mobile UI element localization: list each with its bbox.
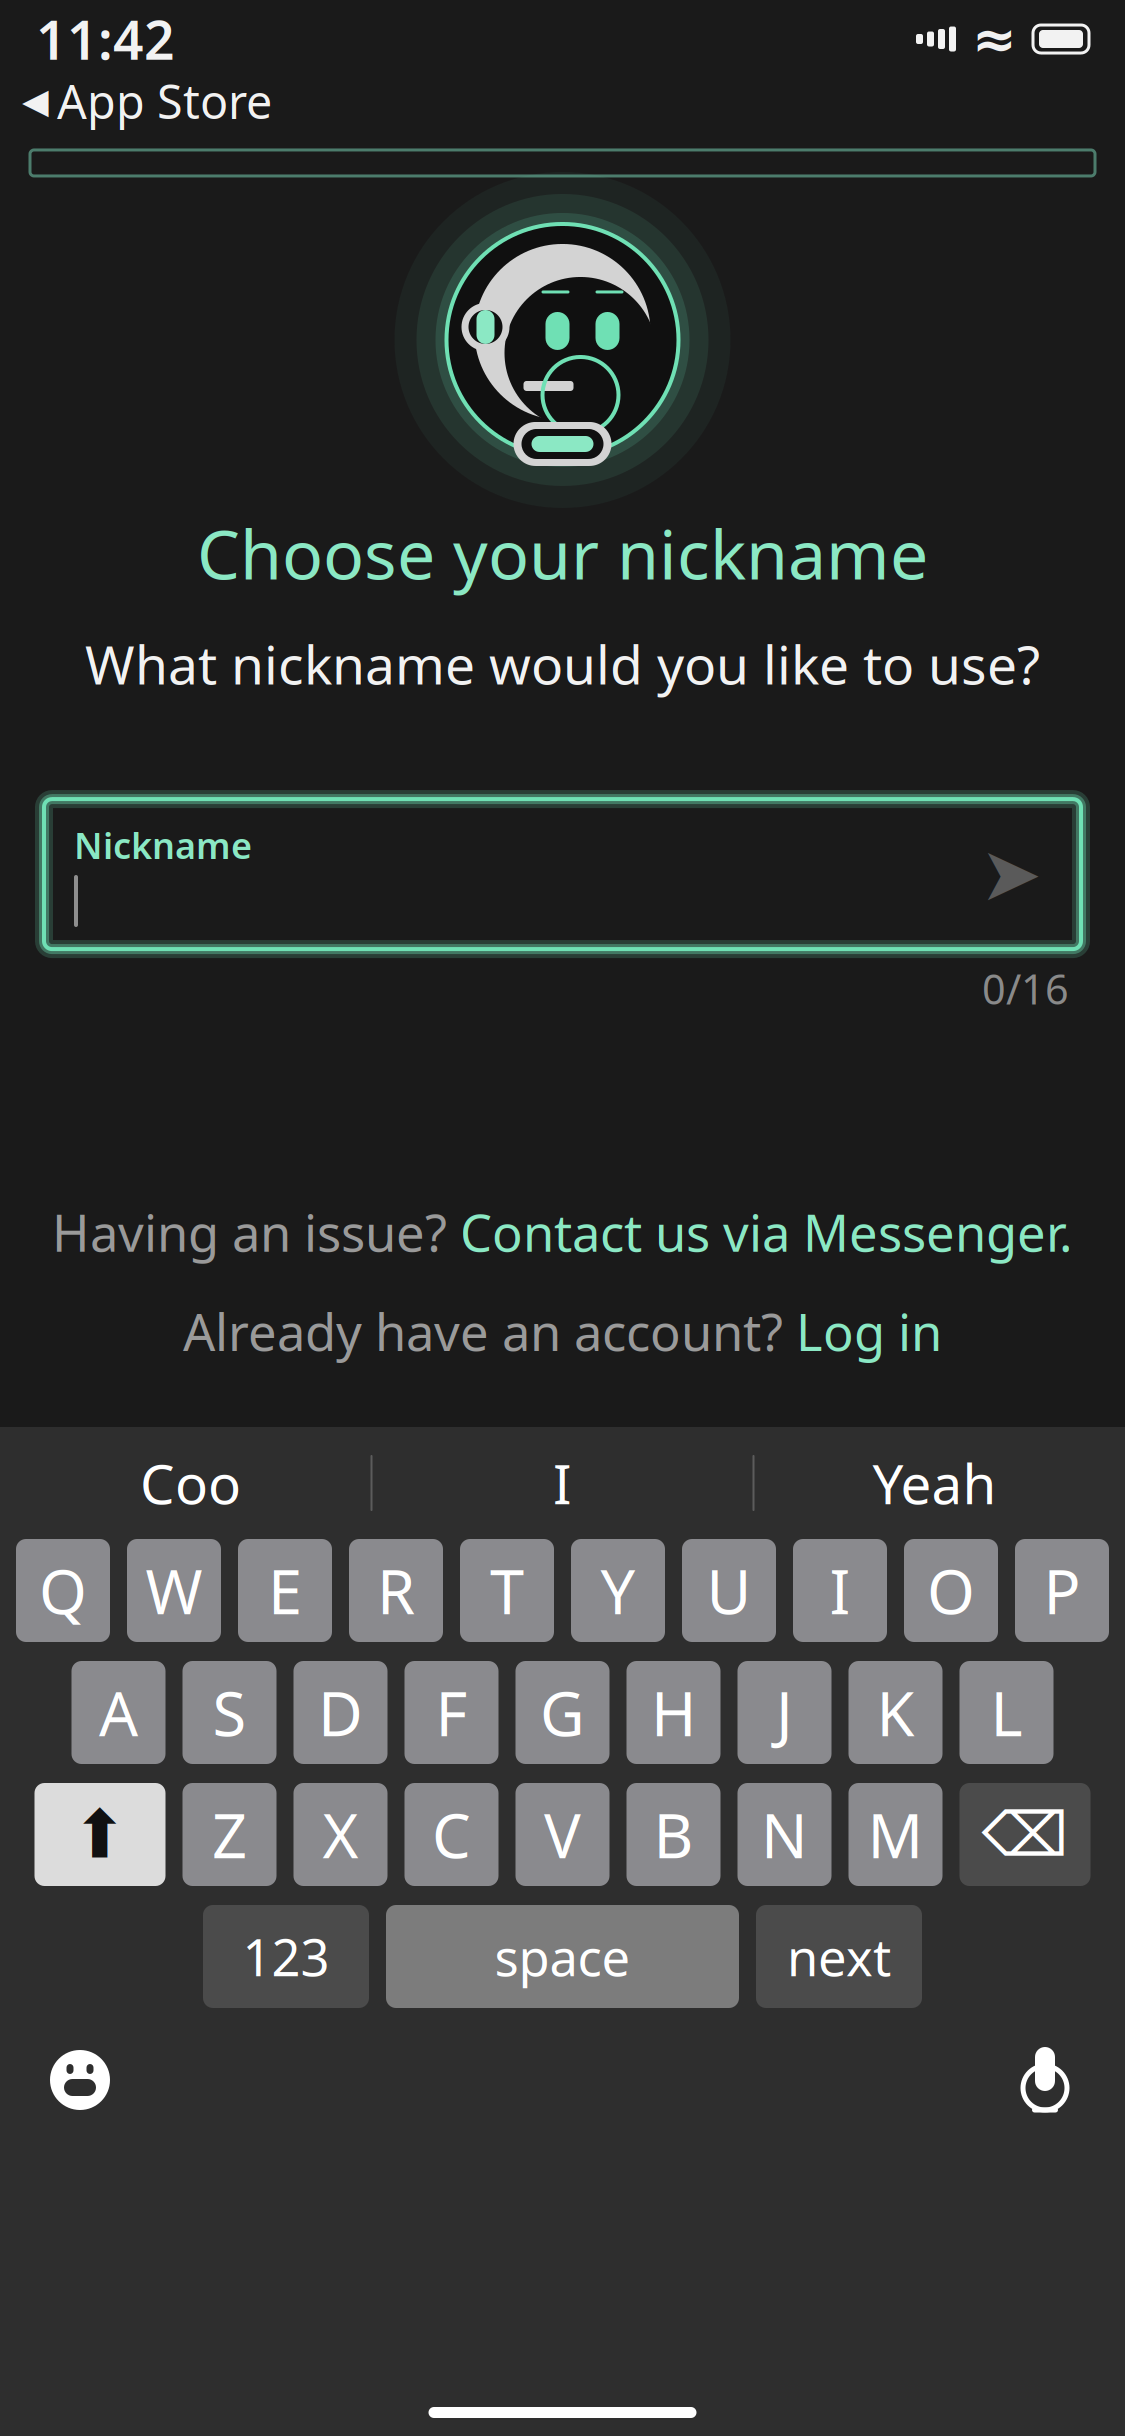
staticText: Y (600, 1550, 635, 1631)
staticText: ⬆ (72, 1797, 128, 1872)
button[interactable]: W (127, 1539, 221, 1642)
button[interactable]: Emoji (34, 2034, 126, 2126)
staticText: ≈ (972, 9, 1017, 69)
staticText: J (776, 1672, 793, 1753)
button[interactable]: L (959, 1661, 1053, 1764)
button[interactable]: 123 (203, 1905, 369, 2008)
button[interactable]: X (293, 1783, 387, 1886)
button[interactable]: G (515, 1661, 609, 1764)
button[interactable]: A (71, 1661, 165, 1764)
button[interactable]: D (293, 1661, 387, 1764)
staticText: P (1043, 1550, 1080, 1631)
button[interactable]: V (515, 1783, 609, 1886)
staticText: K (876, 1672, 914, 1753)
button[interactable]: Shift (34, 1783, 165, 1886)
staticText: B (653, 1794, 693, 1875)
staticText: I (553, 1447, 572, 1519)
staticText: A (99, 1672, 138, 1753)
button[interactable]: T (460, 1539, 554, 1642)
staticText: 123 (242, 1923, 329, 1990)
staticText: Choose your nickname (197, 508, 928, 598)
staticText: ➤ (979, 832, 1042, 916)
staticText: Yeah (872, 1447, 996, 1519)
staticText: 11:42 (36, 4, 175, 74)
button[interactable]: C (404, 1783, 498, 1886)
staticText: C (432, 1794, 471, 1875)
button[interactable]: space (386, 1905, 739, 2008)
staticText: M (867, 1794, 923, 1875)
staticText: O (927, 1550, 975, 1631)
staticText: L (990, 1672, 1022, 1753)
staticText: E (268, 1550, 302, 1631)
button[interactable]: K (848, 1661, 942, 1764)
button[interactable]: Yeah (754, 1435, 1114, 1531)
button[interactable]: U (682, 1539, 776, 1642)
button[interactable]: next (756, 1905, 922, 2008)
staticText: G (540, 1672, 585, 1753)
staticText: space (494, 1923, 630, 1990)
staticText: F (435, 1672, 467, 1753)
button[interactable]: Nickname (44, 799, 1081, 949)
button[interactable]: Coo (10, 1435, 370, 1531)
button[interactable]: R (349, 1539, 443, 1642)
staticText: I (829, 1550, 850, 1631)
button[interactable]: S (182, 1661, 276, 1764)
staticText: S (212, 1672, 246, 1753)
button[interactable]: Having an issue? (38, 1192, 1087, 1272)
staticText: What nickname would you like to use? (85, 628, 1040, 699)
staticText: Z (212, 1794, 247, 1875)
staticText: Q (39, 1550, 87, 1631)
button[interactable]: E (238, 1539, 332, 1642)
staticText: next (787, 1923, 891, 1990)
button[interactable]: I (793, 1539, 887, 1642)
staticText: Already have an account? (183, 1298, 796, 1365)
button[interactable]: Delete (959, 1783, 1090, 1886)
staticText: 0/16 (982, 961, 1069, 1016)
button[interactable]: I (372, 1435, 752, 1531)
staticText: U (706, 1550, 751, 1631)
button[interactable]: J (737, 1661, 831, 1764)
staticText: Nickname (74, 821, 252, 869)
button[interactable]: O (904, 1539, 998, 1642)
button[interactable]: M (848, 1783, 942, 1886)
staticText: Coo (140, 1447, 241, 1519)
button[interactable]: F (404, 1661, 498, 1764)
staticText: Having an issue? (52, 1198, 460, 1266)
staticText: V (544, 1794, 581, 1875)
staticText: W (145, 1550, 202, 1631)
staticText: H (651, 1672, 696, 1753)
staticText: X (322, 1794, 358, 1875)
staticText: R (377, 1550, 415, 1631)
button[interactable]: Y (571, 1539, 665, 1642)
button[interactable]: Z (182, 1783, 276, 1886)
staticText: ◀ (22, 81, 49, 121)
button[interactable]: ◀ (4, 66, 290, 136)
staticText: N (761, 1794, 808, 1875)
staticText: App Store (57, 70, 272, 132)
staticText: T (490, 1550, 524, 1631)
button[interactable]: Dictate (999, 2034, 1091, 2126)
button[interactable]: B (626, 1783, 720, 1886)
button[interactable]: Q (16, 1539, 110, 1642)
staticText: Contact us via Messenger. (460, 1198, 1073, 1266)
staticText: D (318, 1672, 363, 1753)
button[interactable]: P (1015, 1539, 1109, 1642)
button[interactable]: H (626, 1661, 720, 1764)
staticText: ⌫ (981, 1800, 1068, 1869)
button[interactable]: Already have an account? (169, 1292, 956, 1371)
button[interactable]: N (737, 1783, 831, 1886)
staticText: Log in (796, 1298, 942, 1365)
